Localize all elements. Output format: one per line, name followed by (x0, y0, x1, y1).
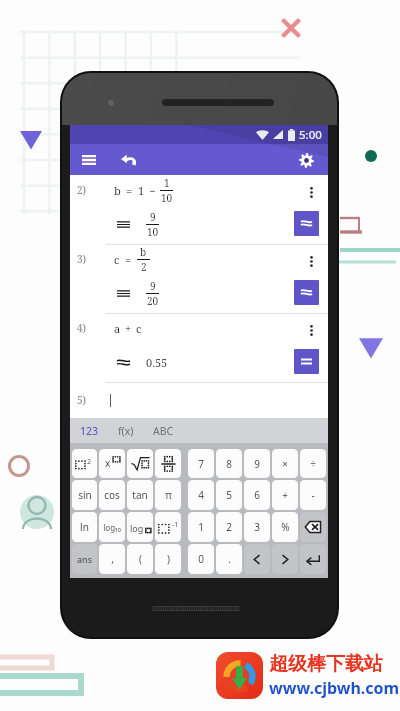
staticText: 10 (161, 191, 173, 204)
staticText: = (125, 252, 132, 267)
staticText: + (282, 488, 288, 502)
staticText: log₁₀ (103, 522, 121, 533)
staticText: = (126, 183, 133, 198)
button[interactable]: Menu (73, 144, 104, 175)
button[interactable]: LEFT (244, 544, 270, 574)
button[interactable]: LOG_BOX (127, 512, 153, 542)
staticText: - (311, 488, 315, 502)
staticText: 1 (164, 176, 170, 190)
staticText: ABC (153, 424, 174, 438)
staticText: 2 (226, 520, 232, 534)
button[interactable]: X_POW (99, 449, 125, 478)
button[interactable]: 4) (70, 314, 328, 383)
button[interactable]: 6 (244, 480, 270, 510)
button[interactable]: tan (127, 480, 153, 510)
staticText: tan (132, 488, 148, 502)
button[interactable]: 5 (216, 480, 242, 510)
button[interactable] (294, 349, 319, 374)
staticText: π (165, 488, 172, 502)
button[interactable]: log₁₀ (99, 512, 125, 542)
button[interactable]: FRACTION (155, 449, 181, 478)
staticText: 2) (77, 183, 87, 197)
button[interactable]: 2 (216, 512, 242, 542)
button[interactable]: More options (295, 314, 328, 342)
staticText: % (281, 520, 290, 534)
button[interactable]: RIGHT (272, 544, 298, 574)
button[interactable]: 3 (244, 512, 270, 542)
button[interactable]: More options (295, 245, 328, 273)
button[interactable]: SQRT (127, 449, 153, 478)
button[interactable]: SQUARE_POW2 (72, 449, 97, 478)
staticText: c (136, 321, 142, 336)
button[interactable]: ans (72, 544, 97, 574)
button[interactable]: 7 (188, 449, 214, 478)
staticText: + (125, 321, 132, 336)
button[interactable]: ÷ (300, 449, 326, 478)
staticText: 2 (87, 457, 92, 467)
staticText: 5:00 (299, 127, 322, 143)
staticText: 5 (226, 488, 232, 502)
button[interactable]: × (272, 449, 298, 478)
staticText: b (114, 183, 121, 198)
staticText: sin (78, 488, 92, 502)
staticText: , (111, 552, 114, 566)
button[interactable]: + (272, 480, 298, 510)
button[interactable]: ENTER (300, 544, 326, 574)
button[interactable]: BACKSPACE (300, 512, 326, 542)
button[interactable]: ABC (150, 420, 177, 442)
staticText: b (140, 245, 147, 259)
button[interactable]: 8 (216, 449, 242, 478)
staticText: 0.55 (146, 355, 168, 370)
staticText: 4) (77, 321, 87, 335)
staticText: 3) (77, 252, 87, 266)
staticText: 4 (198, 488, 204, 502)
staticText: 10 (147, 225, 159, 239)
button[interactable]: cos (99, 480, 125, 510)
button[interactable]: More options (295, 176, 328, 204)
staticText: cos (104, 488, 120, 502)
staticText: 3 (254, 520, 260, 534)
staticText: 1 (138, 183, 145, 198)
button[interactable]: - (300, 480, 326, 510)
staticText: ans (77, 553, 92, 565)
staticText: f(x) (118, 424, 134, 438)
button[interactable]: sin (72, 480, 97, 510)
button[interactable]: 1 (188, 512, 214, 542)
button[interactable]: , (99, 544, 125, 574)
staticText: 9 (254, 457, 260, 471)
button[interactable]: 0 (188, 544, 214, 574)
button[interactable]: ln (72, 512, 97, 542)
button[interactable]: % (272, 512, 298, 542)
button[interactable]: f(x) (115, 420, 137, 442)
button[interactable]: ( (127, 544, 153, 574)
staticText: 9 (150, 210, 156, 224)
button[interactable] (294, 211, 319, 236)
button[interactable]: 123 (77, 420, 102, 442)
button[interactable]: 3) (70, 245, 328, 314)
button[interactable]: ) (155, 544, 181, 574)
button[interactable]: 2) (70, 176, 328, 245)
button[interactable]: Settings (291, 145, 321, 175)
staticText: − (149, 183, 156, 198)
staticText: log (130, 522, 144, 534)
staticText: 6 (254, 488, 260, 502)
staticText: 5) (77, 393, 87, 407)
button[interactable]: . (216, 544, 242, 574)
staticText: www.cjbwh.com (269, 677, 400, 699)
staticText: x (105, 456, 111, 470)
button[interactable]: INVERSE (155, 512, 181, 542)
staticText: ln (80, 520, 89, 534)
staticText: c (114, 252, 120, 267)
staticText: 8 (226, 457, 232, 471)
button[interactable]: 9 (244, 449, 270, 478)
button[interactable]: π (155, 480, 181, 510)
staticText: 9 (150, 279, 156, 293)
button[interactable] (294, 280, 319, 305)
staticText: a (114, 321, 121, 336)
staticText: 7 (198, 457, 204, 471)
button[interactable]: 4 (188, 480, 214, 510)
button[interactable]: Undo (114, 144, 144, 175)
staticText: × (282, 457, 288, 471)
staticText: 123 (80, 424, 99, 438)
staticText: . (228, 552, 231, 566)
